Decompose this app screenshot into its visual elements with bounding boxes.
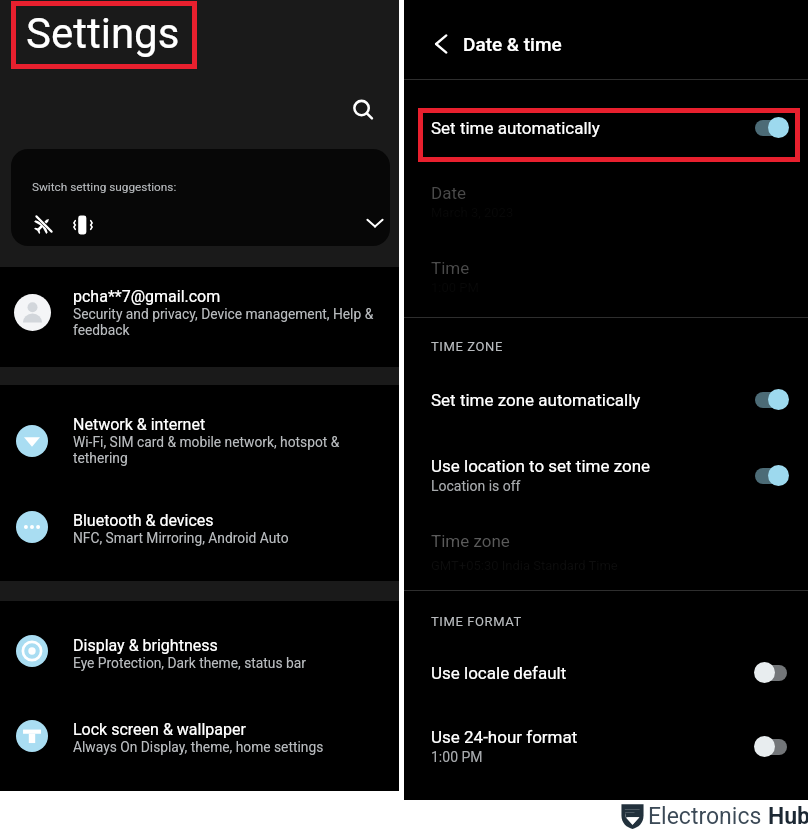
- button[interactable]: Switch setting suggestions:: [11, 149, 390, 246]
- button[interactable]: Set time automatically: [404, 107, 808, 147]
- button[interactable]: Expand suggestions: [361, 209, 389, 237]
- button[interactable]: Use 24-hour format: [404, 716, 808, 774]
- button[interactable]: Lock screen & wallpaper: [0, 717, 399, 797]
- staticText: Electronics: [648, 803, 768, 830]
- button[interactable]: Use locale default: [404, 652, 808, 692]
- staticText: Set time automatically: [431, 118, 600, 138]
- staticText: Time zone: [431, 531, 510, 551]
- button[interactable]: Use location to set time zone: [404, 445, 808, 503]
- staticText: GMT+05:30 India Standard Time: [431, 558, 618, 573]
- staticText: Wi-Fi, SIM card & mobile network, hotspo…: [73, 434, 340, 466]
- staticText: Time: [431, 258, 470, 278]
- button[interactable]: Bluetooth & devices: [0, 508, 399, 588]
- staticText: Date: [431, 183, 466, 203]
- button[interactable]: Display & brightness: [0, 633, 399, 713]
- staticText: Date & time: [463, 33, 562, 55]
- button[interactable]: pcha**7@gmail.com: [0, 284, 399, 364]
- staticText: Lock screen & wallpaper: [73, 720, 246, 739]
- button[interactable]: Time zone: [404, 523, 808, 588]
- button[interactable]: Time: [404, 250, 808, 318]
- staticText: Use locale default: [431, 663, 567, 683]
- staticText: TIME FORMAT: [431, 614, 522, 629]
- staticText: Switch setting suggestions:: [32, 180, 177, 194]
- staticText: Bluetooth & devices: [73, 511, 214, 530]
- staticText: TIME ZONE: [431, 339, 503, 354]
- staticText: Eye Protection, Dark theme, status bar: [73, 655, 306, 671]
- button[interactable]: Network & internet: [0, 412, 399, 492]
- staticText: Use 24-hour format: [431, 727, 578, 747]
- button[interactable]: Back: [423, 26, 459, 62]
- button[interactable]: Date: [404, 175, 808, 245]
- staticText: Network & internet: [73, 415, 206, 434]
- staticText: 1:00 PM: [431, 749, 483, 765]
- button[interactable]: Search: [343, 90, 383, 130]
- staticText: Set time zone automatically: [431, 390, 641, 410]
- staticText: Location is off: [431, 478, 521, 494]
- staticText: NFC, Smart Mirroring, Android Auto: [73, 530, 289, 546]
- staticText: Display & brightness: [73, 636, 218, 655]
- staticText: Use location to set time zone: [431, 456, 651, 476]
- staticText: pcha**7@gmail.com: [73, 287, 221, 306]
- button[interactable]: Set time zone automatically: [404, 379, 808, 419]
- staticText: Settings: [26, 9, 180, 58]
- staticText: Hub: [768, 803, 808, 830]
- staticText: Always On Display, theme, home settings: [73, 739, 324, 755]
- staticText: Security and privacy, Device management,…: [73, 306, 374, 338]
